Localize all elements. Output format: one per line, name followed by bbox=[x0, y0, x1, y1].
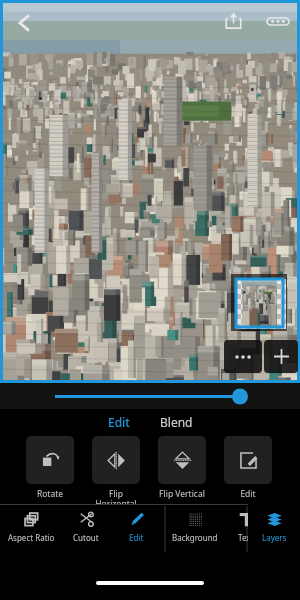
staticText: Edit bbox=[129, 532, 144, 543]
staticText: Edit bbox=[108, 414, 130, 430]
button[interactable]: Text bbox=[226, 504, 266, 543]
button[interactable]: Edit bbox=[114, 504, 158, 543]
button[interactable] bbox=[26, 436, 74, 484]
button[interactable]: Aspect Ratio bbox=[2, 504, 60, 543]
staticText: Flip Horizontal bbox=[85, 488, 147, 504]
staticText: Aspect Ratio bbox=[8, 532, 55, 543]
button[interactable]: Share bbox=[218, 5, 248, 35]
staticText: Flip Vertical bbox=[151, 488, 213, 500]
staticText: Background bbox=[172, 532, 218, 543]
button[interactable]: Cutout bbox=[62, 504, 110, 543]
button[interactable]: Back bbox=[8, 6, 42, 40]
button[interactable]: More options bbox=[264, 7, 292, 35]
button[interactable]: Layers bbox=[248, 504, 300, 543]
button[interactable]: Blend bbox=[151, 411, 202, 433]
button[interactable]: Edit bbox=[99, 411, 139, 433]
button[interactable]: Selected layer bbox=[231, 274, 287, 331]
staticText: Blend bbox=[160, 414, 193, 430]
staticText: Text bbox=[238, 532, 254, 543]
button[interactable] bbox=[0, 383, 300, 409]
button[interactable] bbox=[92, 436, 140, 484]
staticText: Cutout bbox=[73, 532, 99, 543]
button[interactable] bbox=[158, 436, 206, 484]
button[interactable]: Background bbox=[168, 504, 222, 543]
button[interactable]: Add layer bbox=[264, 340, 298, 373]
staticText: Edit bbox=[217, 488, 279, 500]
button[interactable] bbox=[224, 436, 272, 484]
button[interactable]: Layer options bbox=[224, 340, 262, 373]
staticText: Layers bbox=[262, 532, 287, 543]
staticText: Rotate bbox=[19, 488, 81, 500]
